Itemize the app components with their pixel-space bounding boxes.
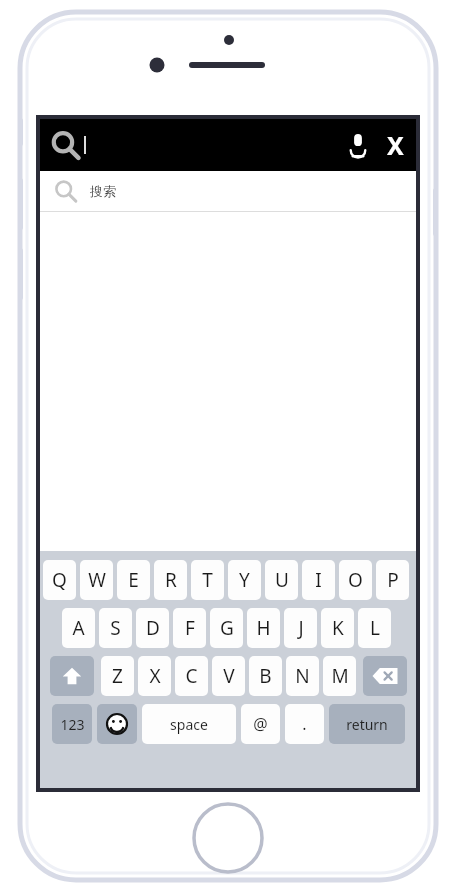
staticText: 搜索 (90, 183, 116, 199)
staticText: H (256, 615, 271, 641)
button[interactable]: X (138, 656, 171, 696)
button[interactable]: E (117, 560, 150, 600)
staticText: @ (253, 713, 268, 735)
staticText: Z (112, 663, 123, 689)
button[interactable]: F (173, 608, 206, 648)
staticText: . (302, 713, 307, 735)
staticText: 123 (60, 715, 85, 734)
staticText: Q (52, 567, 67, 593)
button[interactable]: W (80, 560, 113, 600)
button[interactable]: Close search (378, 123, 412, 167)
button[interactable]: V (212, 656, 245, 696)
staticText: C (185, 663, 198, 689)
staticText: U (275, 567, 289, 593)
button[interactable]: T (191, 560, 224, 600)
button[interactable]: Shift (50, 656, 94, 696)
button[interactable]: L (358, 608, 391, 648)
button[interactable]: S (99, 608, 132, 648)
staticText: X (387, 128, 404, 162)
button[interactable]: Voice search (338, 125, 378, 165)
button[interactable]: I (302, 560, 335, 600)
staticText: J (298, 615, 304, 641)
button[interactable]: A (62, 608, 95, 648)
staticText: G (220, 615, 234, 641)
button[interactable]: 123 (52, 704, 92, 744)
button[interactable]: M (323, 656, 356, 696)
staticText: B (259, 663, 272, 689)
staticText: V (223, 663, 235, 689)
button[interactable]: Z (101, 656, 134, 696)
staticText: S (110, 615, 121, 641)
button[interactable]: Y (228, 560, 261, 600)
staticText: M (331, 663, 349, 689)
staticText: W (88, 567, 106, 593)
staticText: R (165, 567, 177, 593)
button[interactable]: N (286, 656, 319, 696)
button[interactable]: D (136, 608, 169, 648)
staticText: D (146, 615, 160, 641)
button[interactable]: Voice search (40, 119, 416, 171)
button[interactable]: P (376, 560, 409, 600)
button[interactable]: J (284, 608, 317, 648)
staticText: T (202, 567, 213, 593)
button[interactable]: . (285, 704, 324, 744)
staticText: O (348, 567, 363, 593)
button[interactable]: return (329, 704, 405, 744)
staticText: space (170, 715, 208, 734)
button[interactable]: Emoji keyboard (97, 704, 137, 744)
button[interactable]: @ (241, 704, 280, 744)
staticText: A (72, 615, 85, 641)
staticText: N (295, 663, 310, 689)
button[interactable]: 搜索 (40, 171, 416, 211)
button[interactable]: R (154, 560, 187, 600)
staticText: X (149, 663, 161, 689)
button[interactable]: O (339, 560, 372, 600)
button[interactable]: H (247, 608, 280, 648)
button[interactable]: Backspace (363, 656, 407, 696)
staticText: F (185, 615, 195, 641)
staticText: return (346, 715, 388, 734)
button[interactable]: Q (43, 560, 76, 600)
button[interactable]: B (249, 656, 282, 696)
staticText: K (332, 615, 344, 641)
staticText: Y (239, 567, 250, 593)
button[interactable]: space (142, 704, 236, 744)
staticText: L (370, 615, 380, 641)
staticText: E (128, 567, 139, 593)
button[interactable]: U (265, 560, 298, 600)
staticText: I (315, 567, 322, 593)
button[interactable]: K (321, 608, 354, 648)
button[interactable]: G (210, 608, 243, 648)
button[interactable]: C (175, 656, 208, 696)
staticText: P (387, 567, 399, 593)
